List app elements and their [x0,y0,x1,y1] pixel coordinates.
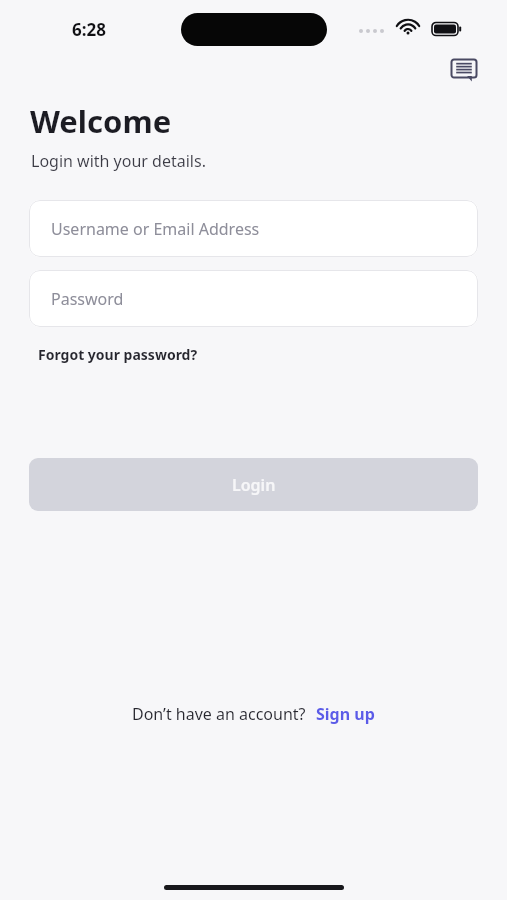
staticText: Login [232,474,276,496]
staticText: Password [51,288,124,310]
button[interactable]: Login [29,458,478,511]
staticText: Username or Email Address [51,218,260,240]
staticText: Login with your details. [31,150,206,172]
button[interactable]: Forgot your password? [30,341,206,368]
staticText: Don’t have an account? [132,703,306,725]
button[interactable]: Username or Email Address [29,200,478,257]
button[interactable]: Password [29,270,478,327]
staticText: Welcome [30,100,172,142]
button[interactable]: Sign up [316,703,375,725]
button[interactable]: Messages [443,49,485,91]
staticText: Forgot your password? [38,345,198,364]
staticText: Sign up [316,703,375,725]
staticText: 6:28 [72,18,106,41]
